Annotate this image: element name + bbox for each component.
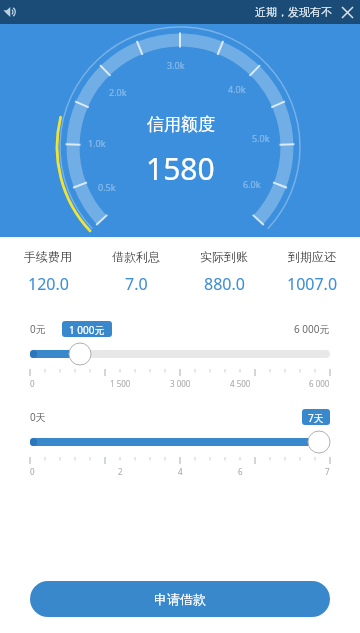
staticText: 借款利息 [112, 249, 160, 264]
staticText: 近期，发现有不 [255, 5, 332, 19]
staticText: 5.0k [252, 132, 270, 144]
staticText: 6.0k [243, 178, 261, 190]
staticText: 2.0k [109, 86, 127, 98]
staticText: 1 500 [110, 378, 131, 389]
staticText: 1007.0 [287, 273, 338, 295]
staticText: 0.5k [98, 181, 116, 193]
button[interactable] [30, 431, 330, 453]
staticText: 0天 [30, 410, 46, 424]
staticText: 2 [118, 466, 123, 477]
staticText: 7天 [308, 411, 324, 423]
staticText: 7.0 [125, 273, 148, 295]
staticText: 信用额度 [147, 114, 215, 135]
staticText: 4.0k [228, 83, 246, 95]
staticText: 申请借款 [154, 591, 206, 607]
staticText: 6 000元 [294, 322, 330, 336]
staticText: 6 [238, 466, 243, 477]
staticText: 7 [325, 466, 330, 477]
staticText: 0 [30, 466, 35, 477]
button[interactable]: 申请借款 [30, 581, 330, 617]
staticText: 实际到账 [200, 249, 248, 264]
staticText: 4 500 [230, 378, 251, 389]
staticText: 1.0k [88, 137, 106, 149]
staticText: 120.0 [28, 273, 69, 295]
staticText: 1580 [146, 148, 215, 189]
button[interactable]: Close [334, 0, 360, 24]
staticText: 1 000元 [69, 323, 105, 335]
staticText: 0 [30, 378, 35, 389]
staticText: 0元 [30, 322, 46, 336]
button[interactable] [30, 343, 330, 365]
staticText: 到期应还 [288, 249, 336, 264]
staticText: 4 [178, 466, 183, 477]
staticText: 3 000 [170, 378, 191, 389]
staticText: 6 000 [309, 378, 330, 389]
staticText: 手续费用 [24, 249, 72, 264]
staticText: 880.0 [204, 273, 245, 295]
other: Volume [2, 3, 20, 21]
staticText: 3.0k [167, 59, 185, 71]
